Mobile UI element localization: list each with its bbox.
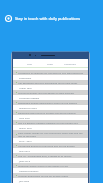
staticText: Data Center design for the community liv…: [18, 131, 84, 137]
staticText: Household goods for the home and for the…: [18, 144, 75, 147]
staticText: Urban Tech: [19, 86, 32, 89]
button[interactable]: CES 2.0 general Network pathway for the …: [13, 120, 88, 125]
button[interactable]: Urban Tech: [13, 85, 88, 90]
staticText: CES 2.0 general Network pathway for the …: [18, 121, 78, 124]
button[interactable]: Monetary Policy: [13, 105, 88, 110]
button[interactable]: April 2021: [13, 115, 88, 120]
button[interactable]: March 2021: [13, 125, 88, 130]
button[interactable]: App logo: [4, 14, 13, 23]
staticText: Conditions of selection for the latest i…: [18, 71, 83, 74]
staticText: July 2020: [19, 179, 30, 182]
staticText: 2019 - 2021: [19, 139, 32, 142]
staticText: March 2021: [19, 126, 33, 129]
staticText: Another publication on the list of daily…: [18, 174, 69, 177]
staticText: April 2021: [19, 116, 31, 119]
button[interactable]: Data Center design for the community liv…: [13, 130, 88, 138]
staticText: Stay in touch with daily publications: [15, 16, 81, 21]
staticText: Consumer Review: [19, 96, 40, 99]
staticText: June 2019: [19, 159, 31, 162]
button[interactable]: May 2018: [13, 148, 88, 153]
button[interactable]: Renewable Energy deployment across all t…: [13, 100, 88, 105]
staticText: Circular Economy and the design of open …: [18, 91, 75, 94]
staticText: Monetary Policy: [19, 106, 37, 109]
button[interactable]: Household goods for the home and for the…: [13, 143, 88, 148]
staticText: Net delivering and very anticipated form…: [18, 81, 78, 84]
button[interactable]: Population: [13, 75, 88, 80]
button[interactable]: Tableau products: [13, 168, 88, 173]
button[interactable]: Consumer Review: [13, 95, 88, 100]
button[interactable]: 2019 - 2021: [13, 138, 88, 143]
staticText: Industrial supply chains in the region o…: [18, 164, 68, 167]
button[interactable]: Another publication on the list of daily…: [13, 173, 88, 178]
button[interactable]: July 2020: [13, 178, 88, 183]
button[interactable]: Delivering new trends in Europe and worl…: [13, 110, 88, 115]
button[interactable]: Industrial supply chains in the region o…: [13, 163, 88, 168]
button[interactable]: Conditions of selection for the latest i…: [13, 70, 88, 75]
staticText: Title: [19, 62, 40, 65]
button[interactable]: Circular Economy and the design of open …: [13, 90, 88, 95]
button[interactable]: Net delivering and very anticipated form…: [13, 80, 88, 85]
staticText: May 2018: [19, 149, 30, 152]
staticText: Tableau products: [19, 169, 39, 172]
button[interactable]: June 2019: [13, 158, 88, 163]
staticText: Renewable Energy deployment across all t…: [18, 101, 78, 104]
button[interactable]: The US - Scandinavia pact, a review of i…: [13, 153, 88, 158]
staticText: Population: [19, 76, 32, 79]
staticText: The US - Scandinavia pact, a review of i…: [18, 154, 72, 157]
staticText: Delivering new trends in Europe and worl…: [18, 111, 76, 114]
staticText: Published: [60, 62, 80, 65]
staticText: Topic: [40, 62, 60, 65]
